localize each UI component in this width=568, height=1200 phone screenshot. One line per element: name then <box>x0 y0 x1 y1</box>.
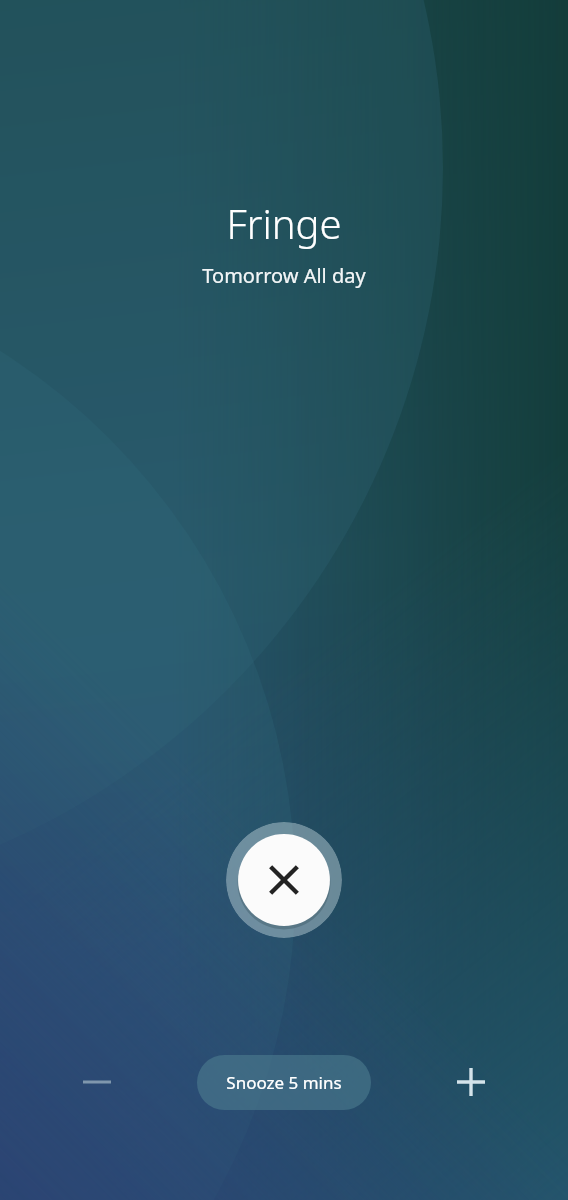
staticText: Snooze 5 mins <box>226 1071 342 1094</box>
button[interactable]: Decrease snooze time <box>65 1050 129 1114</box>
button[interactable]: Snooze 5 mins <box>197 1055 371 1110</box>
staticText: Fringe <box>226 196 342 250</box>
staticText: Tomorrow All day <box>202 262 366 289</box>
button[interactable]: Dismiss <box>226 822 342 938</box>
button[interactable]: Increase snooze time <box>439 1050 503 1114</box>
